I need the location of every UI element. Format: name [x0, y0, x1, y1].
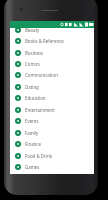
- button[interactable]: Books & Reference: [10, 35, 94, 47]
- button[interactable]: Food & Drink: [10, 150, 94, 162]
- button[interactable]: Education: [10, 92, 94, 104]
- button[interactable]: Finance: [10, 138, 94, 150]
- staticText: Games: [25, 164, 40, 170]
- staticText: Entertainment: [25, 107, 55, 113]
- button[interactable]: Games: [10, 161, 94, 173]
- button[interactable]: Dating: [10, 81, 94, 93]
- button[interactable]: Comics: [10, 58, 94, 70]
- button[interactable]: Beauty: [10, 24, 94, 36]
- button[interactable]: Business: [10, 47, 94, 59]
- button[interactable]: Communication: [10, 69, 94, 81]
- button[interactable]: Family: [10, 127, 94, 139]
- staticText: Dating: [25, 84, 39, 90]
- button[interactable]: Events: [10, 115, 94, 127]
- staticText: Comics: [25, 61, 40, 67]
- staticText: Communication: [25, 72, 58, 78]
- staticText: Business: [25, 50, 44, 56]
- staticText: Finance: [25, 141, 41, 147]
- staticText: Beauty: [25, 27, 40, 33]
- staticText: Books & Reference: [25, 38, 64, 44]
- button[interactable]: Entertainment: [10, 104, 94, 116]
- staticText: Family: [25, 130, 39, 136]
- staticText: Education: [25, 95, 46, 101]
- staticText: Food & Drink: [25, 153, 52, 159]
- staticText: Events: [25, 118, 39, 124]
